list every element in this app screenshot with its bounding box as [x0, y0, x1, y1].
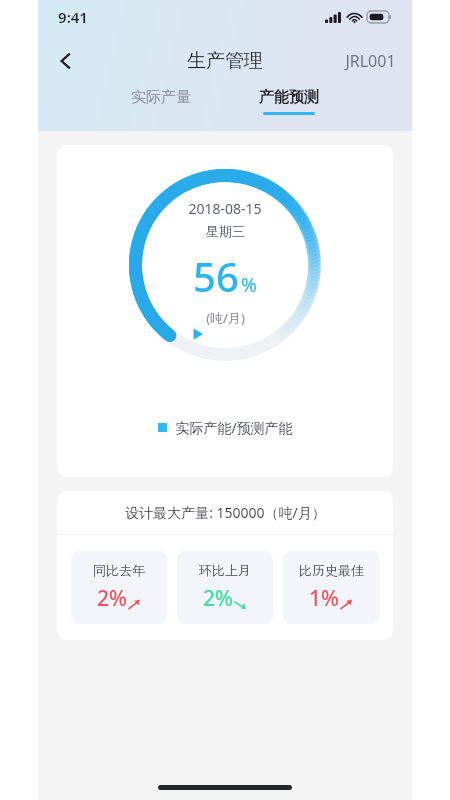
staticText: 1%	[309, 584, 339, 613]
staticText: 2%	[203, 584, 233, 613]
staticText: 星期三	[206, 223, 245, 239]
staticText: 环比上月	[199, 562, 251, 578]
button[interactable]: 产能预测	[253, 86, 325, 117]
staticText: 比历史最佳	[299, 562, 364, 578]
button[interactable]: 实际产量	[125, 86, 197, 117]
button[interactable]: 同比去年	[71, 551, 167, 624]
staticText: %	[241, 272, 257, 298]
staticText: 设计最大产量: 150000（吨/月）	[125, 503, 326, 522]
staticText: 2%	[97, 584, 127, 613]
staticText: 同比去年	[93, 562, 145, 578]
button[interactable]: Back	[46, 41, 86, 81]
staticText: 生产管理	[187, 49, 263, 73]
staticText: (吨/月)	[206, 309, 245, 327]
staticText: 实际产量	[131, 88, 191, 107]
staticText: 56	[193, 249, 239, 303]
button[interactable]: JRL001	[345, 50, 396, 72]
staticText: 实际产能/预测产能	[175, 418, 293, 437]
staticText: 9:41	[58, 7, 88, 27]
button[interactable]: 环比上月	[177, 551, 273, 624]
staticText: 产能预测	[259, 88, 319, 107]
staticText: 2018-08-15	[188, 199, 262, 218]
button[interactable]: 比历史最佳	[283, 551, 379, 624]
